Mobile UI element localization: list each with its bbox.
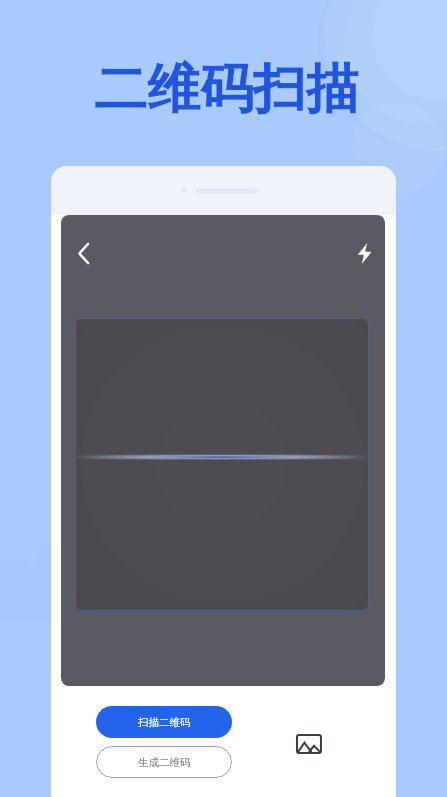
button[interactable]: Flash [347, 236, 381, 270]
staticText: 二维码扫描 [94, 56, 359, 123]
staticText: 扫描二维码 [138, 716, 191, 729]
button[interactable]: Back [63, 233, 103, 273]
button[interactable]: 扫描二维码 [96, 706, 232, 738]
staticText: 生成二维码 [138, 756, 191, 769]
button[interactable]: Gallery [291, 726, 327, 762]
button[interactable]: 生成二维码 [96, 746, 232, 778]
